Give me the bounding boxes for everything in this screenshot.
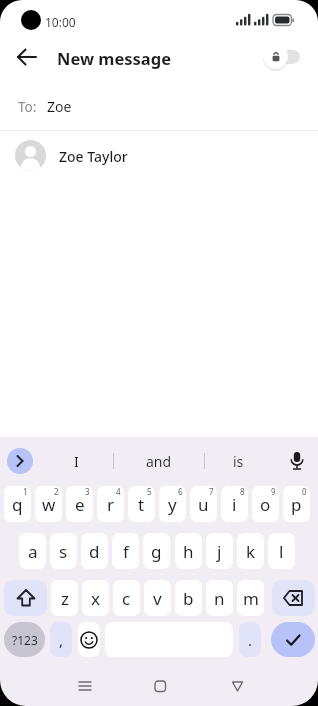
staticText: i [232,493,237,516]
staticText: 9 [271,486,276,497]
staticText: , [59,630,64,650]
button[interactable] [7,448,33,474]
button[interactable]: , [50,622,72,657]
button[interactable]: w [35,486,62,522]
button[interactable]: s [50,533,77,569]
staticText: d [89,540,100,563]
button[interactable]: . [239,622,261,657]
staticText: m [243,587,259,610]
staticText: a [28,540,38,563]
staticText: r [107,493,115,516]
button[interactable]: I [40,441,112,481]
staticText: 6 [178,486,183,497]
staticText: Zoe [47,97,72,116]
staticText: 7 [209,486,214,497]
staticText: b [183,587,194,610]
staticText: 10:00 [45,14,76,30]
staticText: u [198,493,209,516]
staticText: w [42,493,56,516]
button[interactable]: q [4,486,31,522]
button[interactable] [261,43,303,70]
staticText: 5 [147,486,152,497]
staticText: p [291,493,302,516]
button[interactable]: u [190,486,217,522]
button[interactable]: To: [0,83,318,130]
staticText: o [260,493,271,516]
staticText: h [183,540,194,563]
button[interactable] [272,580,315,616]
staticText: j [217,540,222,563]
button[interactable]: and [114,441,203,481]
staticText: z [61,587,69,610]
button[interactable]: b [175,580,202,616]
button[interactable] [271,622,315,657]
staticText: v [153,587,162,610]
staticText: 1 [23,486,28,497]
button[interactable]: g [143,533,170,569]
button[interactable]: z [51,580,78,616]
button[interactable] [78,622,100,657]
staticText: s [59,540,68,563]
staticText: ?123 [12,632,38,648]
staticText: 0 [302,486,307,497]
button[interactable]: h [175,533,202,569]
button[interactable]: t [128,486,155,522]
button[interactable] [10,42,44,72]
staticText: I [74,452,79,471]
staticText: e [75,493,85,516]
button[interactable]: k [237,533,264,569]
button[interactable]: j [206,533,233,569]
button[interactable]: i [221,486,248,522]
staticText: To: [18,98,37,116]
staticText: k [246,540,256,563]
staticText: New message [57,47,172,69]
staticText: f [123,540,129,563]
button[interactable]: x [82,580,109,616]
button[interactable]: p [283,486,310,522]
button[interactable]: ?123 [4,622,45,657]
button[interactable] [4,580,47,616]
staticText: x [91,587,100,610]
staticText: y [168,493,177,516]
button[interactable]: n [206,580,233,616]
staticText: 3 [85,486,90,497]
button[interactable]: c [113,580,140,616]
button[interactable] [285,449,309,473]
button[interactable]: m [237,580,264,616]
staticText: c [122,587,131,610]
staticText: q [12,493,23,516]
staticText: and [146,452,172,471]
button[interactable]: is [205,441,271,481]
staticText: 4 [116,486,121,497]
staticText: t [138,493,145,516]
staticText: l [279,540,284,563]
staticText: is [233,452,244,471]
staticText: 2 [54,486,59,497]
button[interactable]: r [97,486,124,522]
button[interactable]: e [66,486,93,522]
button[interactable]: Zoe Taylor [0,131,318,181]
staticText: g [151,540,162,563]
staticText: Zoe Taylor [59,147,128,166]
staticText: n [214,587,225,610]
staticText: 8 [240,486,245,497]
button[interactable]: o [252,486,279,522]
button[interactable]: d [81,533,108,569]
button[interactable]: v [144,580,171,616]
button[interactable]: y [159,486,186,522]
staticText: . [248,630,253,650]
button[interactable]: a [19,533,46,569]
button[interactable]: l [268,533,295,569]
button[interactable]: f [112,533,139,569]
